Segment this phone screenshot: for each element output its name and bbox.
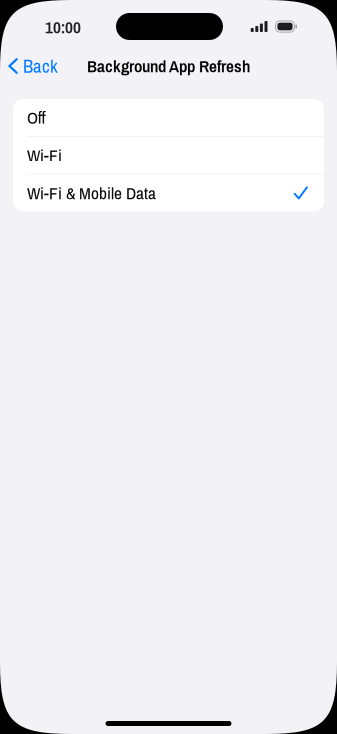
- staticText: Off: [27, 106, 46, 129]
- button[interactable]: Back: [0, 47, 64, 84]
- staticText: Wi-Fi: [27, 143, 62, 167]
- staticText: Background App Refresh: [87, 54, 250, 78]
- staticText: Back: [23, 53, 58, 78]
- button[interactable]: Off: [13, 99, 324, 136]
- staticText: 10:00: [45, 15, 81, 39]
- staticText: Wi-Fi & Mobile Data: [27, 181, 156, 204]
- button[interactable]: Wi-Fi & Mobile Data: [13, 174, 324, 211]
- button[interactable]: Wi-Fi: [13, 137, 324, 174]
